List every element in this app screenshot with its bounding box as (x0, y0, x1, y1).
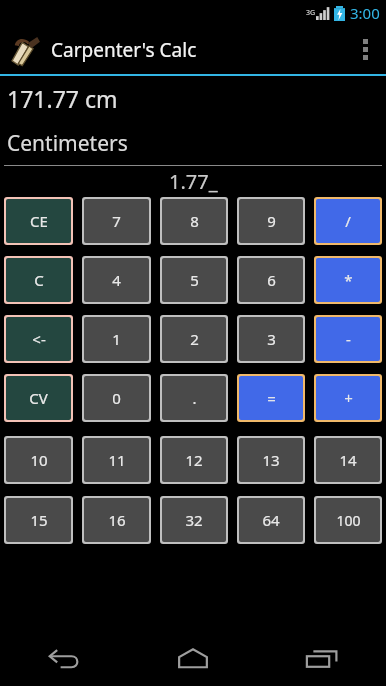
button[interactable]: Home (128, 630, 257, 686)
staticText: 4 (112, 270, 121, 290)
staticText: 11 (108, 450, 126, 470)
staticText: 3G (306, 8, 316, 18)
staticText: - (346, 329, 351, 349)
staticText: 8 (190, 211, 199, 231)
staticText: 13 (262, 450, 280, 470)
button[interactable]: 7 (84, 199, 149, 243)
button[interactable]: * (316, 258, 380, 302)
button[interactable]: 4 (84, 258, 149, 302)
button[interactable]: 11 (84, 438, 149, 482)
staticText: CE (30, 211, 48, 231)
button[interactable]: More options (344, 25, 386, 74)
staticText: 1.77_ (169, 168, 218, 195)
button[interactable]: = (239, 376, 303, 420)
button[interactable]: C (6, 258, 71, 302)
button[interactable]: 12 (162, 438, 226, 482)
button[interactable]: Back (0, 630, 128, 686)
staticText: 32 (185, 510, 203, 530)
button[interactable]: 13 (239, 438, 303, 482)
staticText: 14 (339, 450, 357, 470)
button[interactable]: - (316, 317, 380, 361)
button[interactable]: 3 (239, 317, 303, 361)
staticText: 64 (262, 510, 280, 530)
button[interactable]: 15 (6, 498, 71, 542)
staticText: + (344, 388, 353, 408)
staticText: 10 (30, 450, 48, 470)
button[interactable]: 6 (239, 258, 303, 302)
staticText: 16 (108, 510, 126, 530)
button[interactable]: <- (6, 317, 71, 361)
button[interactable]: CV (6, 376, 71, 420)
button[interactable]: 2 (162, 317, 226, 361)
staticText: Centimeters (7, 129, 128, 158)
button[interactable]: 9 (239, 199, 303, 243)
staticText: 6 (267, 270, 276, 290)
staticText: 1 (112, 329, 121, 349)
button[interactable]: + (316, 376, 380, 420)
button[interactable]: 100 (316, 498, 380, 542)
button[interactable]: 8 (162, 199, 226, 243)
button[interactable]: 0 (84, 376, 149, 420)
button[interactable]: CE (6, 199, 71, 243)
button[interactable]: 16 (84, 498, 149, 542)
button[interactable]: 10 (6, 438, 71, 482)
staticText: C (34, 270, 44, 290)
staticText: 2 (190, 329, 199, 349)
staticText: 3 (267, 329, 276, 349)
staticText: 9 (267, 211, 276, 231)
staticText: 12 (185, 450, 203, 470)
staticText: / (345, 211, 351, 231)
staticText: CV (29, 388, 48, 408)
button[interactable]: 32 (162, 498, 226, 542)
staticText: 0 (112, 388, 121, 408)
button[interactable]: Recent apps (257, 630, 386, 686)
button[interactable]: . (162, 376, 226, 420)
button[interactable]: 1 (84, 317, 149, 361)
staticText: Carpenter's Calc (51, 37, 197, 63)
button[interactable]: 5 (162, 258, 226, 302)
staticText: * (344, 270, 353, 290)
staticText: = (267, 388, 276, 408)
staticText: 171.77 cm (7, 83, 118, 114)
staticText: 15 (30, 510, 48, 530)
staticText: 3:00 (350, 3, 380, 23)
staticText: 7 (112, 211, 121, 231)
staticText: 100 (336, 511, 361, 530)
staticText: <- (32, 329, 46, 349)
button[interactable]: 14 (316, 438, 380, 482)
staticText: 5 (190, 270, 199, 290)
button[interactable]: 64 (239, 498, 303, 542)
button[interactable]: / (316, 199, 380, 243)
staticText: . (192, 388, 197, 408)
